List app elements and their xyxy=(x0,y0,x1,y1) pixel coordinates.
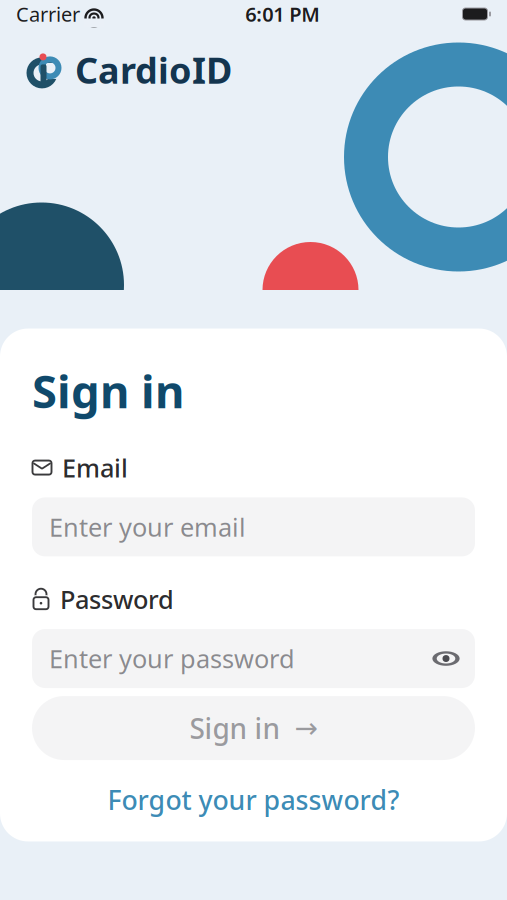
staticText: Password xyxy=(60,582,174,616)
button[interactable]: Forgot your password? xyxy=(32,782,475,817)
staticText: Email xyxy=(62,451,128,484)
staticText: Enter your password xyxy=(49,642,295,675)
button[interactable]: Show password xyxy=(424,641,458,675)
staticText: Sign in xyxy=(32,361,184,421)
staticText: 6:01 PM xyxy=(245,1,320,27)
staticText: CardioID xyxy=(75,46,232,94)
button[interactable]: Sign in xyxy=(32,696,475,760)
staticText: Sign in xyxy=(189,709,280,747)
staticText: Enter your email xyxy=(49,510,246,544)
staticText: Carrier xyxy=(16,1,80,27)
staticText: → xyxy=(294,712,317,744)
staticText: Forgot your password? xyxy=(107,782,399,817)
